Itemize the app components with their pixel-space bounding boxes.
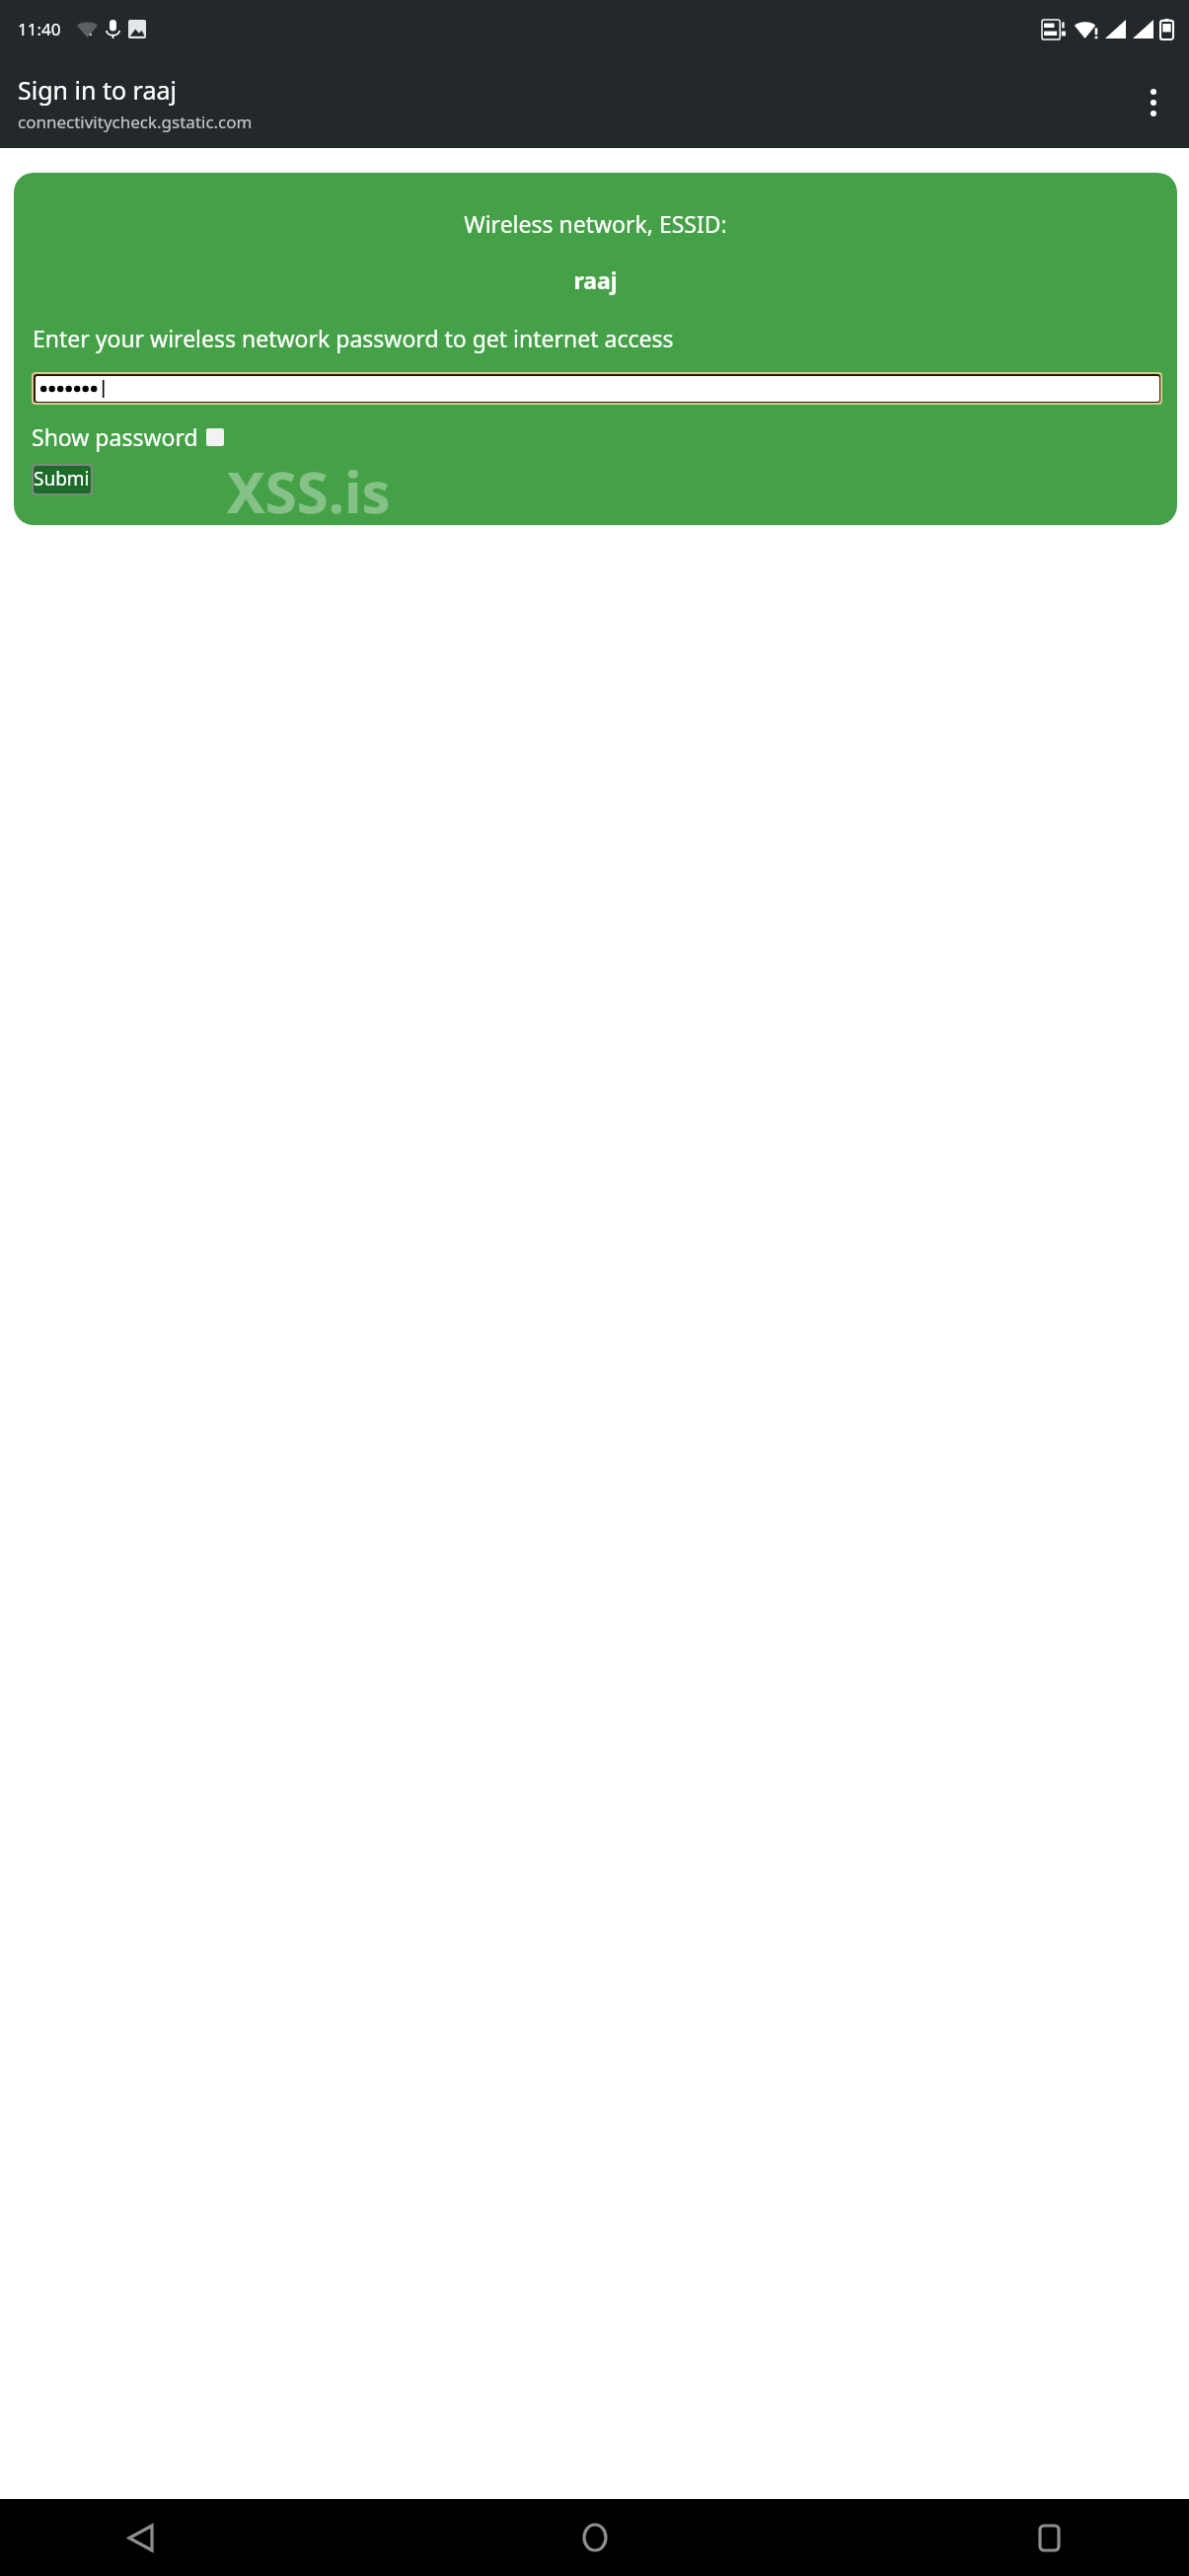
- button[interactable]: Recent apps: [1017, 2506, 1080, 2569]
- button[interactable]: Show password: [32, 421, 224, 452]
- staticText: Submit: [34, 466, 91, 493]
- staticText: connectivitycheck.gstatic.com: [18, 111, 253, 133]
- staticText: Enter your wireless network password to …: [33, 323, 1155, 353]
- button[interactable]: Home: [563, 2506, 627, 2569]
- staticText: Show password: [32, 421, 198, 452]
- button[interactable]: More options: [1126, 75, 1181, 130]
- button[interactable]: Submit: [34, 466, 91, 493]
- staticText: 11:40: [18, 18, 61, 40]
- staticText: XSS.is: [227, 452, 391, 525]
- button[interactable]: [36, 376, 1159, 402]
- staticText: Wireless network, ESSID:: [14, 208, 1177, 239]
- staticText: raaj: [14, 265, 1177, 295]
- button[interactable]: Back: [109, 2506, 172, 2569]
- staticText: Sign in to raaj: [18, 73, 177, 107]
